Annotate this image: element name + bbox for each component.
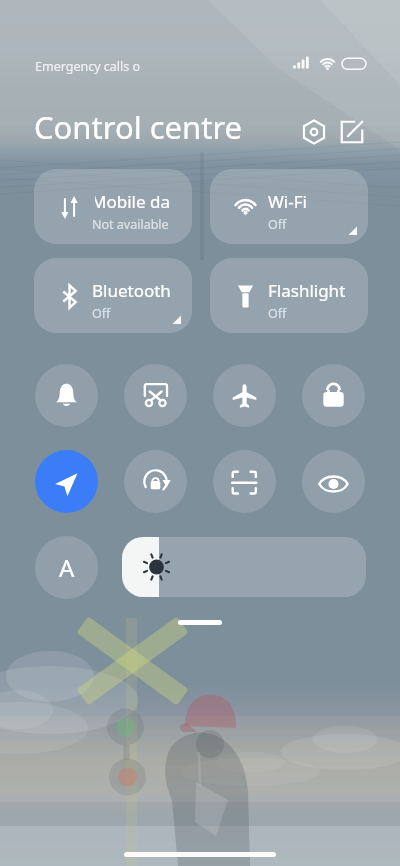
staticText: Emergency calls o (35, 58, 141, 75)
button[interactable]: Location (35, 450, 98, 513)
button[interactable]: Mobile data (34, 169, 192, 244)
staticText: Flashlight (268, 279, 346, 302)
button[interactable]: Reading mode (302, 450, 365, 513)
staticText: A (59, 551, 75, 584)
staticText: Mobile data (95, 190, 170, 213)
staticText: Wi-Fi (268, 190, 307, 213)
staticText: Bluetooth (92, 279, 171, 302)
button[interactable]: Edit (338, 118, 366, 146)
staticText: Off (268, 305, 287, 322)
button[interactable]: Flashlight (210, 258, 368, 333)
button[interactable]: Brightness (122, 537, 366, 597)
button[interactable]: Wi-Fi (210, 169, 368, 244)
staticText: Off (268, 216, 287, 233)
button[interactable]: Screen lock (302, 364, 365, 427)
button[interactable]: Silent (35, 364, 98, 427)
button[interactable]: Auto rotate (124, 450, 187, 513)
staticText: Off (92, 305, 111, 322)
button[interactable]: Auto brightness (35, 536, 98, 599)
button[interactable]: Scan QR code (213, 450, 276, 513)
button[interactable]: Bluetooth (34, 258, 192, 333)
button[interactable]: Settings (300, 118, 328, 146)
button[interactable]: Screenshot (124, 364, 187, 427)
button[interactable]: Aeroplane mode (213, 364, 276, 427)
staticText: Control centre (34, 106, 243, 148)
staticText: Not available (92, 216, 169, 233)
